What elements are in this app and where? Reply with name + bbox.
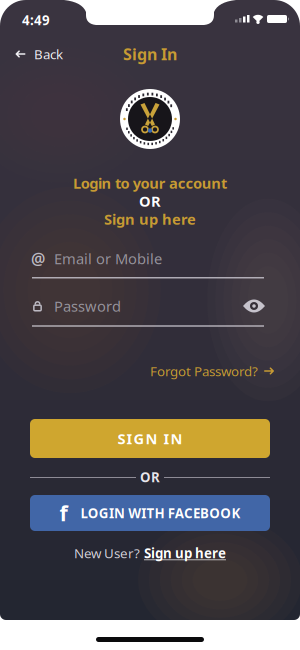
button[interactable]: Show password [243, 299, 265, 312]
staticText: Email or Mobile [54, 249, 162, 268]
staticText: New User? [74, 544, 140, 562]
staticText: Back [34, 45, 63, 63]
staticText: LOGIN WITH FACEBOOK [81, 504, 240, 522]
staticText: f [60, 499, 68, 527]
staticText: Forgot Password? [150, 362, 258, 380]
button[interactable]: SIGN IN [30, 419, 270, 458]
staticText: 4:49 [22, 11, 50, 29]
staticText: SIGN IN [117, 429, 182, 448]
staticText: @ [31, 248, 45, 269]
button[interactable]: Forgot Password? [150, 362, 276, 380]
staticText: Password [54, 296, 121, 316]
button[interactable]: Sign up here [104, 209, 196, 229]
staticText: OR [140, 468, 160, 486]
staticText: Sign up here [144, 544, 226, 562]
staticText: OR [139, 191, 161, 211]
button[interactable]: f [30, 495, 270, 531]
staticText: Login to your account [73, 173, 227, 193]
button[interactable]: New User? [74, 544, 226, 562]
staticText: Sign up here [104, 209, 196, 229]
staticText: Sign In [123, 43, 177, 65]
button[interactable]: Back [0, 43, 300, 65]
